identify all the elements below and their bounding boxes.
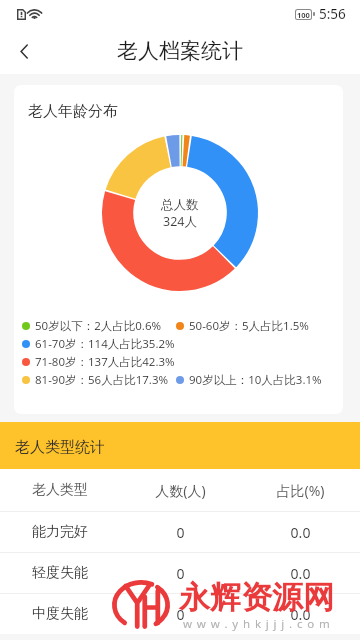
staticText: 5:56 — [319, 5, 346, 23]
staticText: 总人数 — [161, 197, 199, 213]
staticText: 90岁以上：10人占比3.1% — [189, 372, 322, 388]
staticText: 71-80岁：137人占比42.3% — [35, 354, 175, 370]
staticText: 中度失能 — [32, 605, 120, 623]
staticText: 50-60岁：5人占比1.5% — [189, 318, 309, 334]
button[interactable]: 中度失能 — [0, 594, 360, 634]
button[interactable]: 轻度失能 — [0, 553, 360, 593]
staticText: 老人档案统计 — [117, 38, 243, 64]
staticText: 0.0 — [241, 605, 360, 624]
staticText: 100 — [297, 10, 310, 19]
staticText: 占比(%) — [241, 481, 360, 500]
staticText: 61-70岁：114人占比35.2% — [35, 336, 175, 352]
staticText: 0.0 — [241, 564, 360, 583]
staticText: 人数(人) — [120, 481, 241, 500]
staticText: 0 — [120, 523, 241, 542]
staticText: 0 — [120, 605, 241, 624]
staticText: w w w . y h k j j j . c o m — [183, 616, 331, 632]
staticText: 0 — [120, 564, 241, 583]
staticText: 老人类型 — [32, 481, 120, 499]
staticText: 0.0 — [241, 523, 360, 542]
staticText: 81-90岁：56人占比17.3% — [35, 372, 169, 388]
staticText: 老人年龄分布 — [28, 102, 118, 121]
button[interactable]: Back — [4, 31, 44, 71]
staticText: 能力完好 — [32, 523, 120, 541]
staticText: 老人类型统计 — [15, 438, 105, 457]
staticText: 永辉资源网 — [179, 578, 334, 617]
staticText: 轻度失能 — [32, 564, 120, 582]
button[interactable]: 能力完好 — [0, 512, 360, 552]
staticText: 50岁以下：2人占比0.6% — [35, 318, 162, 334]
staticText: 324人 — [163, 213, 197, 230]
